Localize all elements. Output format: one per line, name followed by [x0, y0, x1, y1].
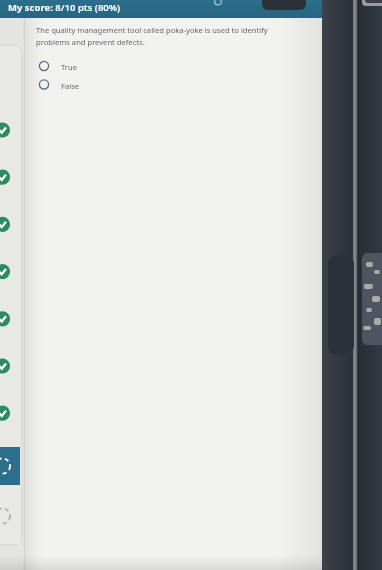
staticText: False — [61, 81, 80, 91]
button[interactable]: Unanswered question — [0, 508, 12, 524]
button[interactable]: Completed question — [0, 216, 12, 232]
button[interactable]: Completed question — [0, 169, 12, 185]
button[interactable]: Current question — [0, 447, 21, 485]
button[interactable]: Completed question — [0, 122, 12, 138]
button[interactable]: Completed question — [0, 405, 12, 421]
staticText: True — [61, 62, 77, 72]
button[interactable]: Completed question — [0, 264, 12, 280]
button[interactable]: Completed question — [0, 311, 12, 327]
button[interactable]: Next — [262, 0, 306, 11]
button[interactable]: False — [34, 77, 124, 93]
button[interactable]: Help — [212, 0, 225, 13]
button[interactable]: True — [34, 58, 124, 74]
button[interactable]: Completed question — [0, 358, 12, 374]
staticText: My score: 8/10 pts (80%) — [8, 1, 121, 14]
staticText: The quality management tool called poka-… — [36, 25, 294, 47]
button[interactable]: My score: 8/10 pts (80%) — [8, 1, 121, 14]
